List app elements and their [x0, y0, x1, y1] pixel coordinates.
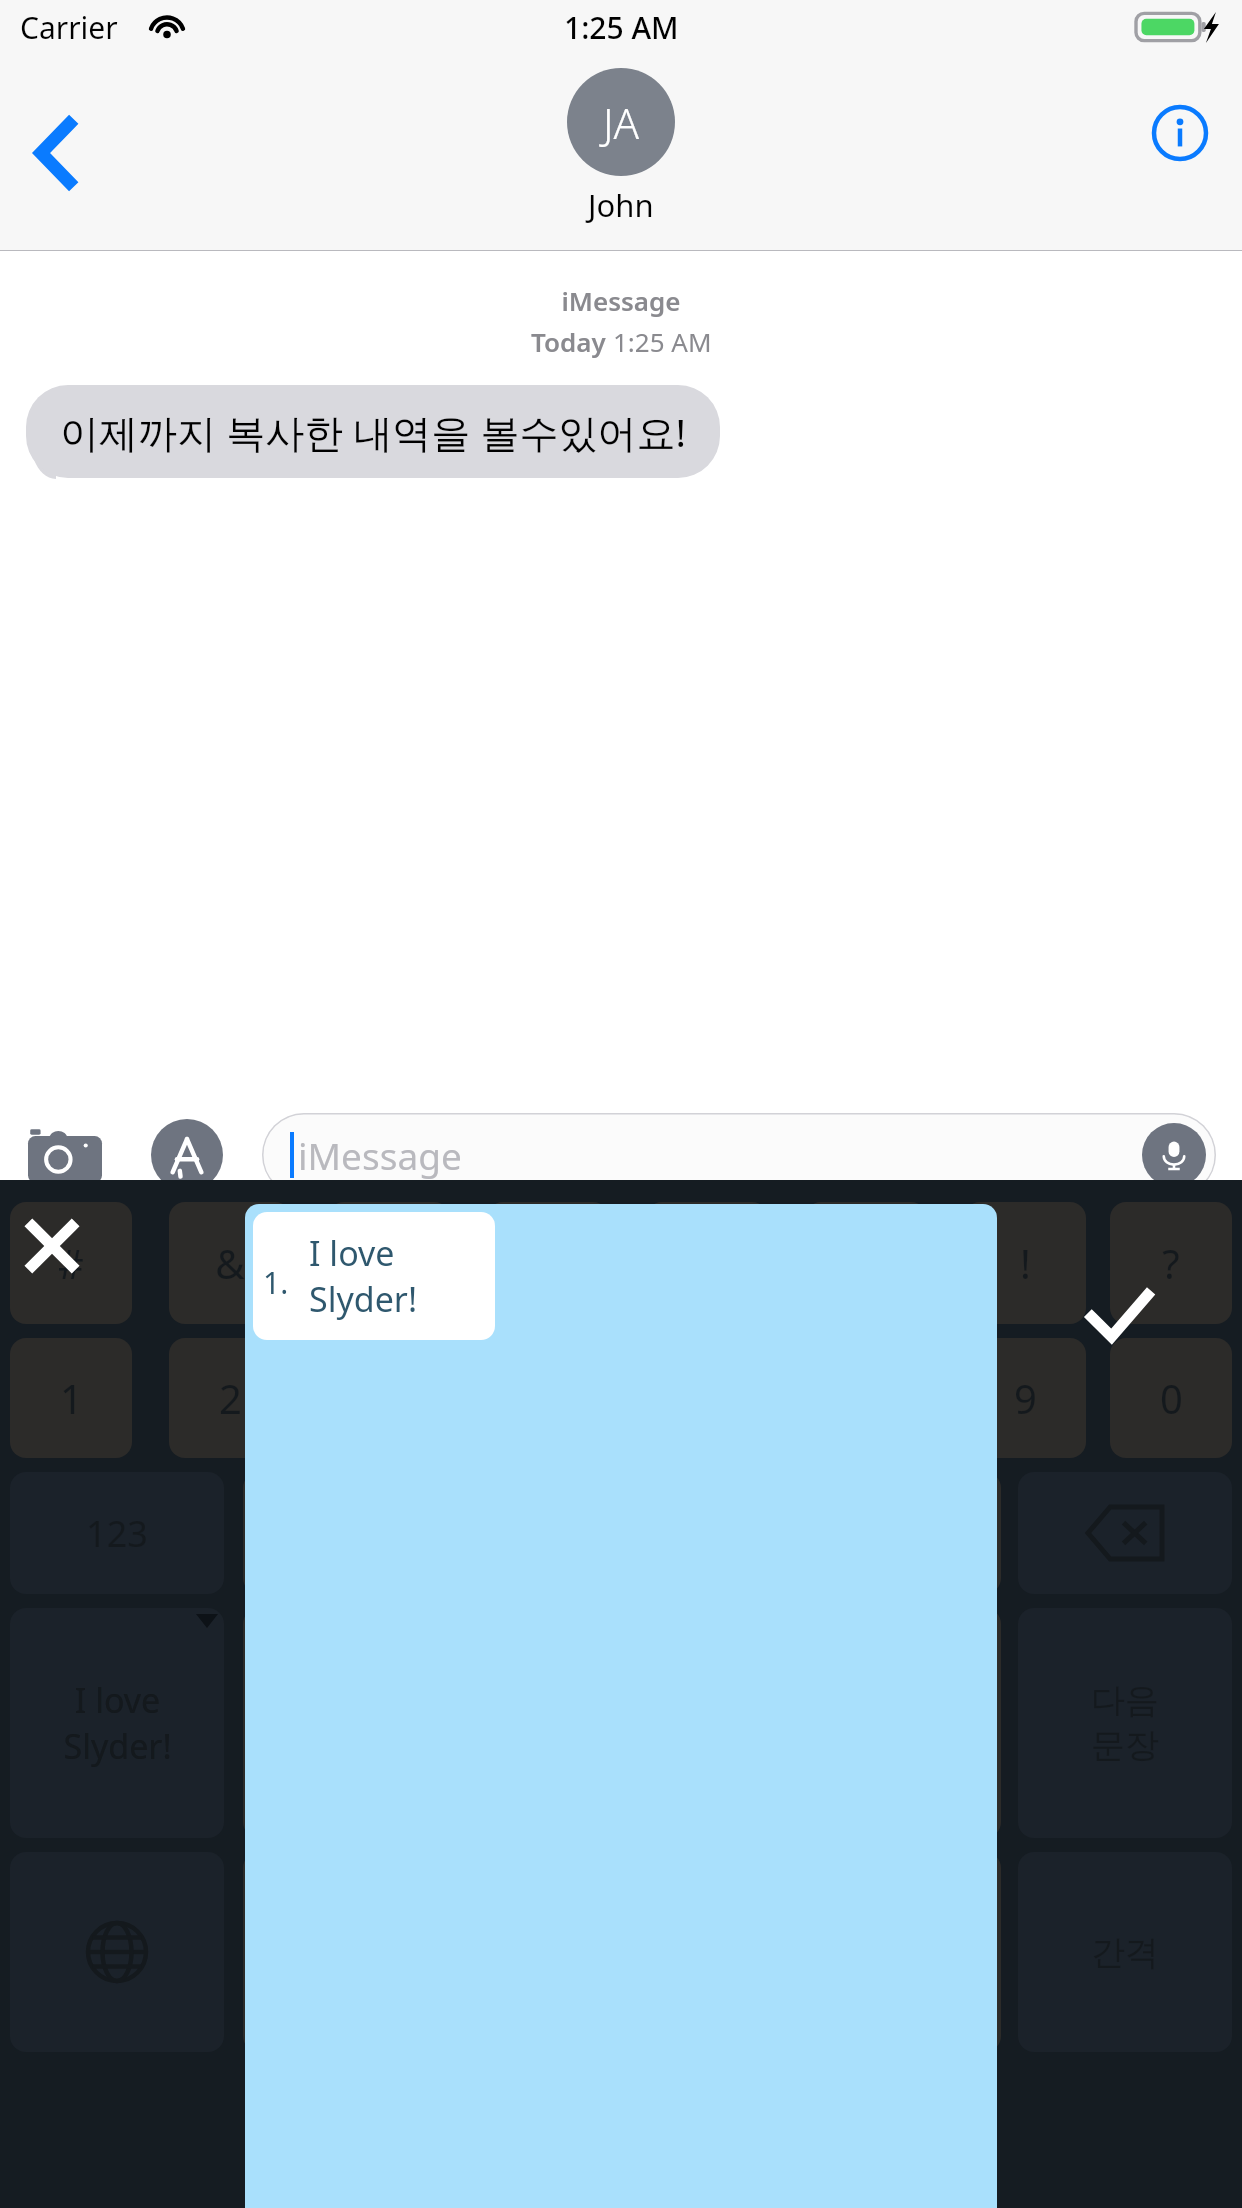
- button[interactable]: 2: [169, 1338, 291, 1458]
- staticText: Today: [531, 324, 613, 359]
- staticText: 1: [60, 1371, 83, 1425]
- staticText: 0: [1160, 1371, 1183, 1425]
- button[interactable]: iMessage: [262, 1113, 1216, 1197]
- staticText: I love Slyder!: [63, 1677, 172, 1769]
- other: Close: [26, 1220, 78, 1272]
- staticText: 123: [86, 1509, 148, 1558]
- button[interactable]: !: [646, 1202, 768, 1324]
- button[interactable]: Apps: [140, 1108, 234, 1202]
- staticText: 1:25 AM: [564, 7, 679, 48]
- staticText: &: [215, 1236, 245, 1290]
- button[interactable]: [879, 1608, 1001, 1838]
- button[interactable]: 이제까지 복사한 내역을 볼수있어요!: [26, 385, 720, 478]
- button[interactable]: 1: [10, 1338, 132, 1458]
- button[interactable]: Dictate: [1142, 1123, 1206, 1187]
- staticText: 2: [219, 1371, 242, 1425]
- staticText: 다음 문장: [1091, 1679, 1159, 1767]
- staticText: %: [372, 1236, 406, 1290]
- button[interactable]: 1.: [253, 1212, 495, 1340]
- staticText: iMessage: [0, 283, 1242, 318]
- button[interactable]: ': [805, 1202, 927, 1324]
- staticText: Carrier: [20, 7, 118, 48]
- button[interactable]: Back: [8, 98, 104, 208]
- other: Confirm: [1088, 1292, 1150, 1344]
- staticText: #: [58, 1236, 84, 1290]
- button[interactable]: JA: [567, 68, 675, 226]
- staticText: iMessage: [298, 1130, 462, 1180]
- button[interactable]: Camera: [18, 1108, 112, 1202]
- button[interactable]: 9: [964, 1338, 1086, 1458]
- button[interactable]: %: [328, 1202, 450, 1324]
- staticText: John: [588, 184, 654, 226]
- button[interactable]: ?: [1110, 1202, 1232, 1324]
- staticText: ?: [1162, 1236, 1180, 1290]
- button[interactable]: [879, 1472, 1001, 1594]
- button[interactable]: ?: [487, 1202, 609, 1324]
- button[interactable]: 0: [1110, 1338, 1232, 1458]
- button[interactable]: [243, 1608, 365, 1838]
- staticText: JA: [603, 94, 640, 151]
- button[interactable]: 3: [328, 1338, 450, 1458]
- staticText: I love Slyder!: [63, 1677, 172, 1769]
- staticText: I love Slyder!: [309, 1230, 418, 1322]
- button[interactable]: !: [964, 1202, 1086, 1324]
- button[interactable]: [243, 1472, 365, 1594]
- staticText: 9: [1014, 1371, 1037, 1425]
- staticText: 이제까지 복사한 내역을 볼수있어요!: [60, 405, 686, 458]
- staticText: 1:25 AM: [613, 324, 712, 359]
- staticText: 간격: [1091, 1931, 1159, 1974]
- button[interactable]: [243, 1852, 365, 2052]
- button[interactable]: [879, 1852, 1001, 2052]
- staticText: !: [1020, 1236, 1031, 1290]
- button[interactable]: Details: [1140, 93, 1220, 173]
- staticText: 1.: [263, 1262, 289, 1303]
- button[interactable]: 1.: [245, 1204, 997, 2208]
- button[interactable]: #: [10, 1202, 132, 1324]
- button[interactable]: &: [169, 1202, 291, 1324]
